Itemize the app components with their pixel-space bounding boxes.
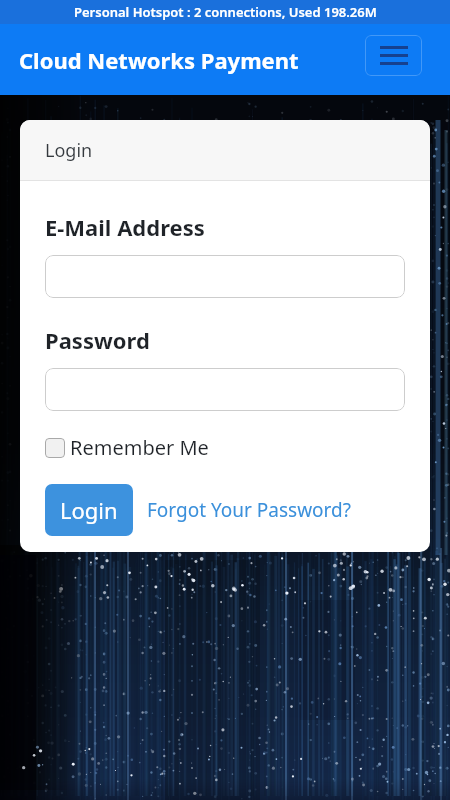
button[interactable] [45,368,405,411]
button[interactable] [365,35,422,76]
button[interactable]: Login [45,484,133,536]
staticText: Login [60,495,118,525]
staticText: E-Mail Address [45,212,205,242]
staticText: Forgot Your Password? [147,497,352,523]
button[interactable]: Remember Me [45,434,209,461]
staticText: Password [45,325,150,355]
staticText: Remember Me [70,434,209,461]
button[interactable]: Forgot Your Password? [147,497,352,523]
staticText: Cloud Networks Payment [19,45,299,75]
staticText: Personal Hotspot : 2 connections, Used 1… [74,3,377,21]
staticText: Login [45,138,93,163]
button[interactable] [45,255,405,298]
